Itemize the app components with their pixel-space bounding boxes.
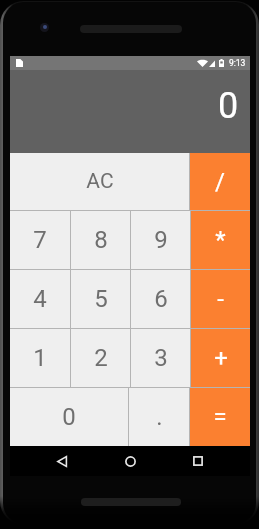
button[interactable]: * bbox=[191, 211, 250, 269]
staticText: / bbox=[215, 168, 225, 196]
staticText: 0 bbox=[62, 403, 76, 431]
staticText: 0 bbox=[218, 85, 239, 127]
button[interactable]: . bbox=[129, 388, 189, 446]
staticText: 3 bbox=[154, 344, 168, 372]
button[interactable]: 1 bbox=[10, 329, 70, 387]
button[interactable]: - bbox=[191, 270, 250, 328]
staticText: 5 bbox=[94, 285, 108, 313]
staticText: 9:13 bbox=[229, 58, 246, 68]
button[interactable]: Recent apps bbox=[164, 446, 232, 476]
button[interactable]: 3 bbox=[131, 329, 190, 387]
button[interactable]: = bbox=[190, 388, 250, 446]
button[interactable]: 6 bbox=[131, 270, 190, 328]
staticText: 2 bbox=[94, 344, 108, 372]
button[interactable]: 4 bbox=[10, 270, 70, 328]
button[interactable]: 9 bbox=[131, 211, 190, 269]
staticText: AC bbox=[86, 169, 114, 194]
staticText: * bbox=[215, 226, 226, 254]
button[interactable]: Home bbox=[96, 446, 164, 476]
staticText: 7 bbox=[33, 226, 47, 254]
button[interactable]: 2 bbox=[71, 329, 130, 387]
staticText: 6 bbox=[154, 285, 168, 313]
button[interactable]: 0 bbox=[10, 388, 128, 446]
button[interactable]: / bbox=[190, 153, 250, 210]
staticText: 9 bbox=[154, 226, 168, 254]
staticText: 4 bbox=[33, 285, 47, 313]
button[interactable]: + bbox=[191, 329, 250, 387]
staticText: + bbox=[214, 344, 228, 372]
staticText: . bbox=[156, 403, 163, 431]
staticText: = bbox=[213, 403, 227, 431]
button[interactable]: 8 bbox=[71, 211, 130, 269]
button[interactable]: 7 bbox=[10, 211, 70, 269]
button[interactable]: 5 bbox=[71, 270, 130, 328]
button[interactable]: AC bbox=[10, 153, 189, 210]
staticText: 8 bbox=[94, 226, 108, 254]
button[interactable]: Back bbox=[28, 446, 96, 476]
staticText: - bbox=[217, 285, 224, 313]
staticText: 1 bbox=[33, 344, 47, 372]
